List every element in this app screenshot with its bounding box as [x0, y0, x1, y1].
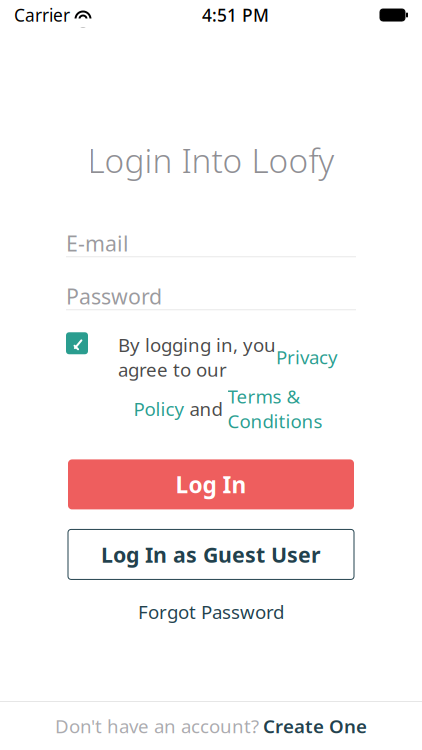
staticText: Privacy: [276, 345, 338, 369]
staticText: Terms & Conditions: [227, 384, 322, 433]
staticText: 4:51 PM: [202, 3, 269, 26]
staticText: Don't have an account?: [55, 714, 259, 738]
staticText: and: [184, 396, 227, 421]
staticText: Policy: [133, 396, 184, 421]
staticText: Login Into Loofy: [87, 138, 334, 182]
staticText: Log In: [175, 469, 246, 499]
button[interactable]: Log In as Guest User: [68, 529, 354, 579]
staticText: Log In as Guest User: [101, 540, 321, 569]
staticText: E-mail: [66, 229, 129, 257]
staticText: Carrier: [14, 3, 70, 26]
button[interactable]: Log In: [68, 459, 354, 509]
button[interactable]: Don't have an account?: [0, 702, 422, 750]
staticText: Forgot Password: [138, 599, 284, 624]
staticText: [70, 3, 75, 26]
staticText: Password: [66, 282, 162, 310]
staticText: Create One: [263, 714, 367, 738]
staticText: By logging in, you agree to our: [118, 332, 276, 382]
button[interactable]: Agree to Privacy Policy and Terms and Co…: [66, 332, 88, 354]
button[interactable]: Forgot Password: [128, 593, 294, 630]
